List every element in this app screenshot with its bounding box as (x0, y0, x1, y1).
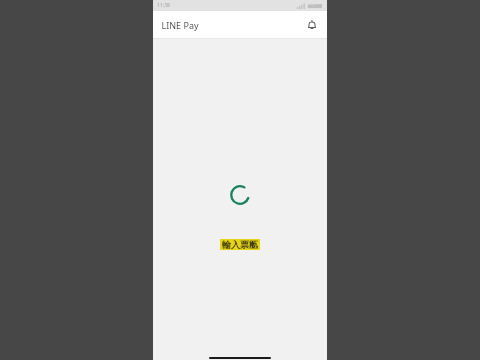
button[interactable]: Notifications (302, 15, 322, 35)
staticText: 輸入票匭 (222, 239, 258, 250)
staticText: 11:38 (157, 2, 170, 9)
staticText: LINE Pay (161, 19, 199, 31)
